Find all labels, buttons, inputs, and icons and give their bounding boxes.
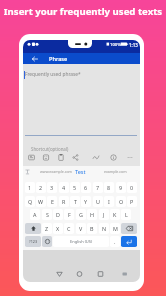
staticText: 4 <box>62 184 66 191</box>
button[interactable]: Paste <box>56 153 66 163</box>
button[interactable]: S <box>42 209 52 220</box>
button[interactable]: 2 <box>36 182 46 193</box>
staticText: ?123 <box>29 239 38 244</box>
staticText: English (US) <box>70 239 93 244</box>
staticText: Y <box>84 198 88 205</box>
button[interactable]: 8 <box>104 182 114 193</box>
button[interactable]: Switch keyboard <box>119 268 131 280</box>
button[interactable]: 7 <box>93 182 103 193</box>
button[interactable]: C <box>64 223 74 234</box>
button[interactable]: Z <box>42 223 52 234</box>
button[interactable]: 9 <box>116 182 126 193</box>
button[interactable]: Y <box>81 196 91 207</box>
staticText: Q <box>28 198 33 205</box>
button[interactable]: Recent apps <box>95 268 107 280</box>
button[interactable]: Shift <box>25 223 41 234</box>
staticText: Phrase <box>49 55 68 63</box>
staticText: U <box>96 198 100 205</box>
button[interactable]: Info <box>109 153 119 163</box>
staticText: 1:13 <box>129 42 138 48</box>
button[interactable]: U <box>93 196 103 207</box>
button[interactable]: Clipboard <box>27 153 37 163</box>
button[interactable]: Navigate up <box>30 53 40 64</box>
staticText: O <box>119 198 124 205</box>
button[interactable]: P <box>127 196 137 207</box>
staticText: 6 <box>84 184 88 191</box>
staticText: L <box>125 211 128 218</box>
staticText: Shortcut(optional) <box>31 146 69 152</box>
staticText: 100% <box>110 42 121 48</box>
button[interactable]: D <box>53 209 63 220</box>
staticText: E <box>51 198 54 205</box>
button[interactable]: K <box>110 209 120 220</box>
button[interactable]: English (US) <box>53 236 109 247</box>
button[interactable]: Q <box>25 196 35 207</box>
staticText: 3 <box>50 184 54 191</box>
button[interactable]: 5 <box>70 182 80 193</box>
staticText: W <box>38 198 44 205</box>
staticText: example.com <box>104 169 127 174</box>
button[interactable]: 1 <box>25 182 35 193</box>
staticText: S <box>46 211 49 218</box>
button[interactable]: T <box>70 196 80 207</box>
button[interactable]: E <box>47 196 57 207</box>
button[interactable]: W <box>36 196 46 207</box>
button[interactable]: N <box>99 223 109 234</box>
staticText: Insert your frequently used texts <box>0 5 166 18</box>
button[interactable]: Home <box>74 268 86 280</box>
button[interactable]: 4 <box>59 182 69 193</box>
staticText: 5 <box>73 184 77 191</box>
button[interactable]: B <box>87 223 97 234</box>
staticText: T <box>74 198 77 205</box>
button[interactable]: J <box>99 209 109 220</box>
button[interactable]: V <box>76 223 86 234</box>
staticText: N <box>102 225 107 232</box>
staticText: K <box>113 211 117 218</box>
button[interactable]: L <box>121 209 131 220</box>
staticText: 2 <box>39 184 43 191</box>
button[interactable]: ?123 <box>25 236 41 247</box>
button[interactable]: 0 <box>127 182 137 193</box>
staticText: I <box>108 198 110 205</box>
button[interactable]: Translate <box>71 153 81 163</box>
button[interactable]: F <box>64 209 74 220</box>
button[interactable]: Enter <box>121 236 137 247</box>
staticText: C <box>67 225 71 232</box>
staticText: J <box>103 211 105 218</box>
button[interactable]: Back <box>54 268 66 280</box>
button[interactable]: Stickers <box>41 153 51 163</box>
staticText: Z <box>45 225 49 232</box>
button[interactable]: Emoji <box>42 236 52 247</box>
staticText: G <box>79 211 83 218</box>
button[interactable]: R <box>59 196 69 207</box>
button[interactable]: A <box>30 209 40 220</box>
staticText: www.example.com <box>40 169 72 174</box>
staticText: H <box>90 211 94 218</box>
staticText: 9 <box>119 184 123 191</box>
staticText: 1 <box>28 184 32 191</box>
button[interactable]: More options <box>125 153 135 163</box>
staticText: D <box>56 211 60 218</box>
button[interactable]: O <box>116 196 126 207</box>
staticText: A <box>33 211 37 218</box>
button[interactable]: Backspace <box>121 223 137 234</box>
staticText: F <box>68 211 71 218</box>
staticText: 0 <box>130 184 134 191</box>
staticText: Test <box>75 168 86 176</box>
button[interactable]: I <box>104 196 114 207</box>
button[interactable]: 3 <box>47 182 57 193</box>
staticText: V <box>79 225 83 232</box>
staticText: B <box>90 225 94 232</box>
button[interactable]: . <box>110 236 120 247</box>
staticText: 7 <box>96 184 100 191</box>
button[interactable]: G <box>76 209 86 220</box>
button[interactable]: 6 <box>81 182 91 193</box>
staticText: . <box>114 238 116 245</box>
button[interactable]: X <box>53 223 63 234</box>
button[interactable]: H <box>87 209 97 220</box>
button[interactable]: Handwriting <box>91 153 101 163</box>
staticText: R <box>62 198 66 205</box>
staticText: Frequently used phrase* <box>25 71 81 78</box>
staticText: P <box>130 198 134 205</box>
button[interactable]: M <box>110 223 120 234</box>
